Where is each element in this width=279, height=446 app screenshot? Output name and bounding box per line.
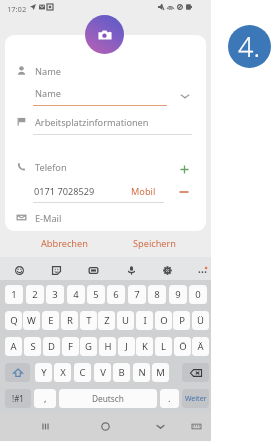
button[interactable]: 0 [189, 285, 207, 304]
button[interactable]: Ü [192, 311, 209, 330]
staticText: Telefon [35, 161, 67, 174]
button[interactable]: C [74, 363, 91, 382]
button[interactable]: Remove phone number [175, 183, 193, 201]
button[interactable]: Keyboard settings [159, 262, 175, 278]
button[interactable]: J [118, 337, 135, 356]
staticText: K [142, 340, 148, 353]
button[interactable]: P [173, 311, 190, 330]
staticText: 8 [154, 288, 160, 301]
staticText: E [48, 314, 54, 327]
button[interactable]: Expand name fields [176, 87, 194, 105]
button[interactable]: D [43, 337, 60, 356]
staticText: Z [104, 314, 110, 327]
button[interactable]: 5 [87, 285, 105, 304]
staticText: 6 [113, 288, 119, 301]
button[interactable]: Symbols [5, 389, 31, 408]
button[interactable]: O [155, 311, 172, 330]
button[interactable]: Comma [34, 389, 56, 408]
button[interactable]: T [80, 311, 97, 330]
button[interactable]: V [94, 363, 111, 382]
staticText: Ä [197, 340, 204, 353]
staticText: Arbeitsplatzinformationen [35, 116, 149, 129]
button[interactable]: Y [35, 363, 52, 382]
staticText: C [79, 366, 86, 379]
button[interactable]: Period [160, 389, 179, 408]
button[interactable]: 4 [67, 285, 85, 304]
button[interactable]: 6 [107, 285, 125, 304]
button[interactable]: H [99, 337, 116, 356]
staticText: Abbrechen [41, 237, 88, 250]
button[interactable]: U [117, 311, 134, 330]
button[interactable]: Voice input [123, 262, 139, 278]
button[interactable]: Hide keyboard [151, 417, 169, 435]
staticText: A [10, 340, 17, 353]
button[interactable]: More options [194, 262, 210, 278]
button[interactable]: X [54, 363, 71, 382]
button[interactable]: W [23, 311, 40, 330]
button[interactable]: Add phone number [175, 160, 193, 178]
staticText: 4. [238, 28, 261, 65]
button[interactable]: Speichern [109, 234, 199, 252]
staticText: F [68, 340, 73, 353]
staticText: . [168, 392, 171, 405]
button[interactable]: K [136, 337, 153, 356]
staticText: R [67, 314, 73, 327]
button[interactable]: Stickers [48, 262, 64, 278]
staticText: V [100, 366, 106, 379]
staticText: Mobil [131, 185, 156, 198]
staticText: 0 [195, 288, 201, 301]
staticText: Speichern [133, 237, 176, 250]
button[interactable]: 7 [128, 285, 146, 304]
button[interactable]: Ä [192, 337, 209, 356]
staticText: !#1 [12, 393, 24, 404]
button[interactable]: Abbrechen [19, 234, 109, 252]
button[interactable]: Recent apps [36, 417, 54, 435]
button[interactable]: L [155, 337, 172, 356]
staticText: 5 [93, 288, 99, 301]
staticText: Deutsch [92, 393, 124, 404]
button[interactable]: 8 [148, 285, 166, 304]
button[interactable]: Home [96, 417, 114, 435]
staticText: L [161, 340, 166, 353]
button[interactable]: GIF [85, 262, 101, 278]
button[interactable]: 3 [46, 285, 64, 304]
staticText: X [60, 366, 66, 379]
button[interactable]: Emoji [11, 262, 27, 278]
staticText: E-Mail [35, 212, 62, 225]
staticText: 4 [73, 288, 79, 301]
staticText: 9 [175, 288, 181, 301]
button[interactable]: F [62, 337, 79, 356]
button[interactable]: I [136, 311, 153, 330]
button[interactable]: B [113, 363, 130, 382]
staticText: Name [35, 65, 61, 78]
button[interactable]: N [133, 363, 150, 382]
staticText: Q [10, 314, 18, 327]
button[interactable]: E [42, 311, 59, 330]
staticText: 17:02 [7, 4, 27, 14]
staticText: M [156, 366, 165, 379]
staticText: Ü [197, 314, 204, 327]
button[interactable]: 9 [169, 285, 187, 304]
staticText: Weiter [185, 394, 207, 404]
staticText: 2 [32, 288, 38, 301]
button[interactable]: Z [98, 311, 115, 330]
button[interactable]: Ö [174, 337, 191, 356]
staticText: P [179, 314, 185, 327]
button[interactable]: 2 [26, 285, 44, 304]
button[interactable]: Next [182, 389, 209, 408]
button[interactable]: Add contact photo [85, 15, 124, 54]
staticText: H [104, 340, 112, 353]
button[interactable]: Change keyboard [187, 417, 205, 435]
button[interactable]: Space [59, 389, 157, 408]
button[interactable]: Backspace [182, 363, 209, 382]
button[interactable]: R [61, 311, 78, 330]
staticText: N [138, 366, 146, 379]
button[interactable]: 1 [5, 285, 23, 304]
button[interactable]: S [24, 337, 41, 356]
button[interactable]: M [152, 363, 169, 382]
button[interactable]: Q [5, 311, 22, 330]
button[interactable]: Shift [5, 363, 30, 382]
staticText: 1 [11, 288, 17, 301]
button[interactable]: G [80, 337, 97, 356]
button[interactable]: A [5, 337, 22, 356]
